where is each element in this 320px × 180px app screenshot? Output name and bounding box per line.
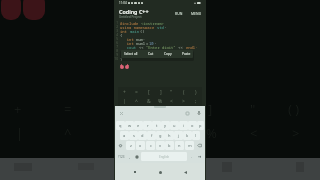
button[interactable]: u (170, 121, 179, 130)
button[interactable]: + (119, 88, 130, 97)
button[interactable]: w (125, 121, 134, 130)
staticText: % (206, 124, 217, 142)
button[interactable]: ) (190, 88, 201, 97)
staticText: 10 (149, 41, 154, 45)
button[interactable]: s (129, 131, 138, 140)
staticText: 5 (114, 37, 118, 41)
other: Selection handle (124, 63, 130, 69)
button[interactable]: ; (190, 97, 201, 106)
button[interactable]: c (146, 141, 155, 150)
button[interactable]: d (138, 131, 147, 140)
staticText: RUN (175, 11, 183, 16)
staticText: cout (120, 45, 139, 49)
staticText: Coding C++ (119, 8, 149, 15)
button[interactable]: English (141, 152, 187, 161)
button[interactable]: = (131, 88, 142, 97)
staticText: MENU (191, 11, 202, 16)
button[interactable]: f (147, 131, 156, 140)
button[interactable]: Clipboard (118, 110, 124, 116)
button[interactable]: q (116, 121, 125, 130)
staticText: " (170, 89, 173, 96)
button[interactable]: Select all (123, 50, 139, 58)
staticText: t (156, 123, 158, 128)
button[interactable]: Home (155, 167, 165, 177)
button[interactable]: ( (178, 88, 189, 97)
button[interactable]: Recents (130, 167, 140, 177)
button[interactable]: ] (155, 88, 166, 97)
staticText: & (147, 98, 151, 105)
button[interactable]: Emoji (133, 152, 140, 161)
button[interactable]: < (166, 97, 177, 106)
button[interactable]: x (136, 141, 145, 150)
staticText: g (159, 133, 162, 138)
staticText: c (150, 143, 152, 148)
staticText: "Enter digit" (146, 45, 176, 49)
staticText: . (191, 154, 193, 159)
button[interactable]: k (183, 131, 192, 140)
button[interactable]: b (165, 141, 174, 150)
button[interactable]: | (119, 97, 130, 106)
button[interactable]: MENU (189, 8, 204, 19)
button[interactable]: r (143, 121, 152, 130)
staticText: ) (195, 89, 197, 96)
staticText: o (191, 123, 194, 128)
button[interactable]: Back (180, 167, 190, 177)
button[interactable]: g (156, 131, 165, 140)
button[interactable]: v (156, 141, 165, 150)
button[interactable]: % (155, 97, 166, 106)
staticText: 1 (114, 21, 118, 25)
staticText: int (120, 37, 136, 41)
staticText: num; (136, 37, 146, 41)
staticText: m (188, 143, 192, 148)
button[interactable]: ?123 (116, 152, 126, 161)
staticText: Paste (182, 52, 191, 56)
button[interactable]: n (175, 141, 184, 150)
button[interactable]: Shift (116, 141, 125, 150)
button[interactable]: p (197, 121, 204, 130)
button[interactable]: a (120, 131, 129, 140)
staticText: cin (120, 49, 136, 53)
button[interactable]: e (134, 121, 143, 130)
staticText: 4 (114, 33, 118, 37)
button[interactable]: m (185, 141, 194, 150)
button[interactable]: y (161, 121, 170, 130)
staticText: ; (146, 53, 149, 57)
button[interactable]: & (143, 97, 154, 106)
button[interactable]: t (152, 121, 161, 130)
button[interactable]: i (179, 121, 188, 130)
staticText: English (159, 155, 170, 159)
staticText: main (130, 29, 140, 33)
button[interactable]: Cut (147, 50, 155, 58)
button[interactable]: " (166, 88, 177, 97)
button[interactable]: Copy (163, 50, 173, 58)
staticText: Cut (148, 52, 154, 56)
staticText: 6 (114, 41, 118, 45)
button[interactable]: [ (143, 88, 154, 97)
button[interactable]: ^ (131, 97, 142, 106)
button[interactable]: l (192, 131, 200, 140)
button[interactable]: Paste (181, 50, 192, 58)
button[interactable]: , (126, 152, 133, 161)
button[interactable]: > (178, 97, 189, 106)
button[interactable]: o (188, 121, 197, 130)
button[interactable]: j (174, 131, 183, 140)
button[interactable]: h (165, 131, 174, 140)
staticText: e (137, 123, 140, 128)
button[interactable]: RUN (173, 8, 185, 19)
button[interactable]: Backspace (195, 141, 204, 150)
staticText: 3 (114, 29, 118, 33)
button[interactable]: z (126, 141, 135, 150)
staticText: % (158, 98, 163, 105)
staticText: >> (136, 49, 143, 53)
staticText: w (128, 123, 132, 128)
button[interactable]: Enter (195, 152, 204, 161)
button[interactable]: Voice input (196, 110, 202, 116)
staticText: = (135, 89, 138, 96)
staticText: b (168, 143, 171, 148)
staticText: { (120, 33, 123, 37)
staticText: | (16, 124, 24, 142)
button[interactable]: Settings (184, 110, 190, 116)
